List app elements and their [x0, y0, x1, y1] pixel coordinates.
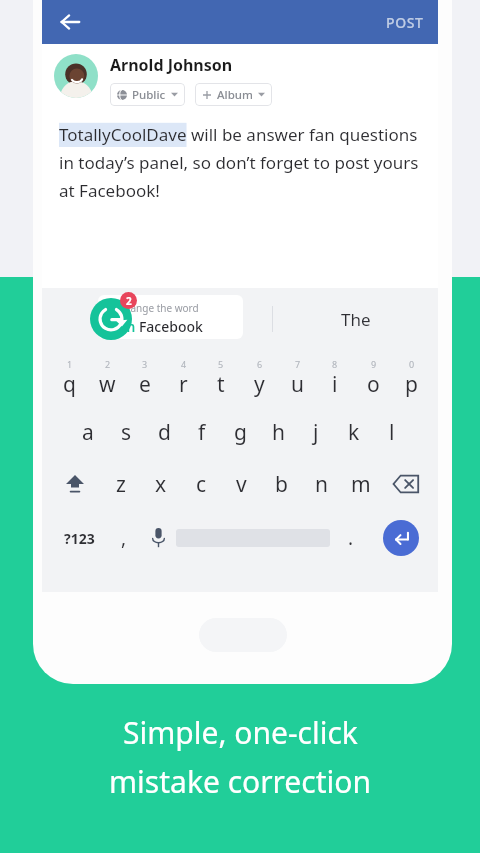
- staticText: POST: [386, 13, 424, 32]
- button[interactable]: k: [335, 406, 373, 458]
- staticText: v: [236, 470, 247, 499]
- staticText: b: [275, 470, 288, 499]
- button[interactable]: h: [259, 406, 297, 458]
- staticText: Change the word: [118, 301, 199, 315]
- button[interactable]: Backspace: [381, 458, 430, 510]
- button[interactable]: f: [183, 406, 221, 458]
- button[interactable]: l: [373, 406, 411, 458]
- button[interactable]: 4: [164, 350, 202, 406]
- staticText: i: [332, 370, 338, 399]
- staticText: o: [367, 370, 380, 399]
- button[interactable]: 6: [240, 350, 278, 406]
- staticText: 7: [295, 358, 301, 370]
- staticText: l: [389, 418, 395, 447]
- staticText: .: [348, 525, 354, 551]
- staticText: t: [217, 370, 225, 399]
- button[interactable]: Back: [50, 2, 90, 42]
- staticText: y: [254, 370, 265, 399]
- button[interactable]: j: [297, 406, 335, 458]
- staticText: m: [351, 470, 371, 499]
- staticText: 4: [181, 358, 187, 370]
- staticText: n: [315, 470, 328, 499]
- button[interactable]: 9: [354, 350, 392, 406]
- staticText: 5: [218, 358, 224, 370]
- button[interactable]: Audience: Public: [110, 83, 185, 106]
- button[interactable]: x: [141, 458, 181, 510]
- button[interactable]: .: [330, 510, 371, 566]
- staticText: 0: [409, 358, 415, 370]
- button[interactable]: Add to album: [195, 83, 272, 106]
- button[interactable]: ?123: [50, 510, 108, 566]
- staticText: j: [313, 418, 319, 447]
- button[interactable]: d: [145, 406, 183, 458]
- staticText: 8: [332, 358, 338, 370]
- button[interactable]: Profile photo: [54, 54, 98, 98]
- button[interactable]: 8: [316, 350, 354, 406]
- staticText: on Facebook: [118, 317, 203, 336]
- staticText: 2: [105, 358, 111, 370]
- button[interactable]: ,: [108, 510, 140, 566]
- button[interactable]: b: [261, 458, 301, 510]
- button[interactable]: m: [341, 458, 381, 510]
- staticText: mistake correction: [109, 761, 371, 802]
- button[interactable]: 5: [202, 350, 240, 406]
- button[interactable]: 7: [278, 350, 316, 406]
- button[interactable]: v: [221, 458, 261, 510]
- button[interactable]: Grammarly suggestions: [90, 292, 138, 340]
- button[interactable]: Enter: [383, 520, 419, 556]
- button[interactable]: POST: [372, 3, 438, 42]
- staticText: ,: [121, 525, 127, 551]
- staticText: TotallyCoolDave will be answer fan quest…: [59, 123, 424, 202]
- staticText: q: [63, 370, 76, 399]
- staticText: 9: [371, 358, 377, 370]
- staticText: c: [196, 470, 207, 499]
- button[interactable]: 1: [50, 350, 88, 406]
- staticText: ?123: [64, 529, 95, 548]
- staticText: f: [198, 418, 206, 447]
- staticText: s: [121, 418, 132, 447]
- button[interactable]: a: [69, 406, 107, 458]
- button[interactable]: n: [301, 458, 341, 510]
- button[interactable]: c: [181, 458, 221, 510]
- button[interactable]: s: [107, 406, 145, 458]
- button[interactable]: 0: [392, 350, 430, 406]
- staticText: 2: [126, 294, 132, 308]
- staticText: 3: [142, 358, 148, 370]
- staticText: 6: [257, 358, 263, 370]
- staticText: k: [348, 418, 360, 447]
- staticText: g: [234, 418, 247, 447]
- staticText: h: [272, 418, 285, 447]
- staticText: Album: [217, 87, 253, 103]
- staticText: a: [82, 418, 94, 447]
- button[interactable]: 3: [126, 350, 164, 406]
- staticText: Simple, one-click: [123, 712, 358, 753]
- button[interactable]: Shift: [50, 458, 100, 510]
- staticText: 1: [67, 358, 73, 370]
- button[interactable]: Change the word: [98, 295, 243, 339]
- staticText: Public: [132, 87, 166, 103]
- staticText: u: [291, 370, 304, 399]
- staticText: The: [341, 308, 371, 331]
- staticText: z: [116, 470, 126, 499]
- button[interactable]: z: [100, 458, 141, 510]
- staticText: Arnold Johnson: [110, 54, 233, 76]
- staticText: e: [139, 370, 151, 399]
- staticText: r: [179, 370, 188, 399]
- button[interactable]: Voice input: [140, 510, 176, 566]
- staticText: w: [99, 370, 116, 399]
- staticText: d: [158, 418, 171, 447]
- button[interactable]: g: [221, 406, 259, 458]
- staticText: x: [155, 470, 167, 499]
- button[interactable]: 2: [88, 350, 126, 406]
- staticText: p: [405, 370, 418, 399]
